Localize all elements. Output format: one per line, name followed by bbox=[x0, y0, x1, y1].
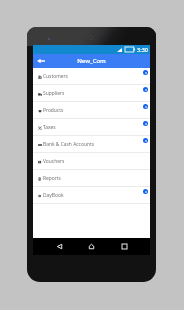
button[interactable]: Add Suppliers bbox=[143, 87, 148, 92]
button[interactable]: Suppliers bbox=[33, 85, 150, 102]
button[interactable]: Add DayBook bbox=[143, 189, 148, 194]
staticText: New_Com bbox=[77, 57, 106, 65]
staticText: Reports bbox=[43, 175, 61, 182]
staticText: Products bbox=[43, 107, 64, 114]
button[interactable]: Add Bank & Cash Accounts bbox=[143, 138, 148, 143]
button[interactable]: Navigate up bbox=[35, 54, 46, 68]
staticText: Taxes bbox=[43, 124, 56, 131]
button[interactable]: Bank & Cash Accounts bbox=[33, 136, 150, 153]
staticText: Customers bbox=[43, 73, 68, 80]
button[interactable]: Add Customers bbox=[143, 70, 148, 75]
button[interactable]: Recent apps bbox=[118, 240, 131, 253]
button[interactable]: Reports bbox=[33, 170, 150, 187]
staticText: DayBook bbox=[43, 192, 64, 199]
button[interactable]: Customers bbox=[33, 68, 150, 85]
button[interactable]: Back bbox=[53, 240, 66, 253]
button[interactable]: Taxes bbox=[33, 119, 150, 136]
staticText: 3:30 bbox=[137, 46, 148, 53]
staticText: Vouchers bbox=[43, 158, 65, 165]
button[interactable]: DayBook bbox=[33, 187, 150, 204]
button[interactable]: Add Taxes bbox=[143, 121, 148, 126]
staticText: Suppliers bbox=[43, 90, 65, 97]
button[interactable]: Home bbox=[85, 240, 98, 253]
button[interactable]: Add Products bbox=[143, 104, 148, 109]
staticText: Bank & Cash Accounts bbox=[43, 141, 95, 148]
button[interactable]: Vouchers bbox=[33, 153, 150, 170]
button[interactable]: Products bbox=[33, 102, 150, 119]
